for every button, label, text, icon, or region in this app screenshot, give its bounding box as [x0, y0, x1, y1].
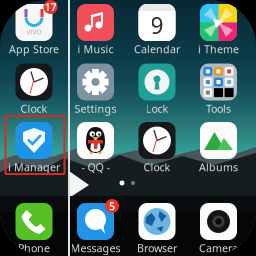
staticText: 5 — [109, 199, 115, 213]
button[interactable]: 9 — [134, 4, 180, 54]
button[interactable]: Tools — [200, 63, 237, 113]
staticText: 9 — [150, 10, 163, 40]
staticText: Messages — [70, 241, 120, 255]
staticText: Lock — [145, 101, 168, 116]
button[interactable]: Settings — [74, 63, 116, 113]
staticText: App Store — [9, 42, 59, 56]
button[interactable]: Clock — [15, 63, 52, 113]
staticText: Clock — [143, 160, 170, 174]
button[interactable]: Phone — [15, 203, 52, 253]
staticText: 17 — [44, 0, 56, 14]
staticText: Browser — [137, 241, 177, 255]
button[interactable]: Browser — [137, 203, 177, 253]
staticText: Calendar — [134, 42, 180, 56]
button[interactable]: Albums — [199, 122, 238, 172]
button[interactable]: vivo — [9, 4, 59, 54]
staticText: Tools — [206, 101, 231, 116]
staticText: 星期五 — [149, 40, 164, 47]
button[interactable]: i Theme — [198, 4, 239, 54]
button[interactable]: i Manager — [8, 122, 60, 172]
staticText: i Manager — [8, 160, 60, 174]
staticText: Albums — [199, 160, 238, 174]
button[interactable]: Camera — [199, 203, 238, 253]
button[interactable]: i Music — [77, 4, 114, 54]
staticText: Camera — [199, 241, 238, 255]
staticText: Settings — [74, 101, 116, 116]
button[interactable]: Lock — [138, 63, 175, 113]
staticText: i Music — [77, 42, 113, 56]
button[interactable]: Clock — [138, 122, 175, 172]
staticText: vivo — [26, 26, 41, 37]
button[interactable]: - QQ - — [77, 122, 114, 172]
staticText: Phone — [18, 241, 50, 255]
button[interactable]: 5 — [70, 203, 120, 253]
staticText: Clock — [20, 101, 47, 116]
staticText: - QQ - — [81, 160, 109, 174]
staticText: i Theme — [198, 42, 239, 56]
